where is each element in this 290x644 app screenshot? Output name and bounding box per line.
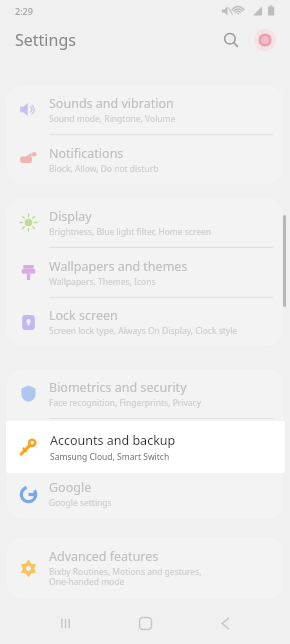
button[interactable]: Lock screen — [7, 298, 283, 346]
staticText: Accounts and backup — [49, 429, 175, 446]
staticText: Screen lock type, Always On Display, Clo… — [49, 325, 238, 337]
button[interactable]: Sounds and vibration — [7, 85, 283, 134]
staticText: Bixby Routines, Motions and gestures, On… — [49, 566, 202, 588]
button[interactable]: Accounts and backup — [7, 419, 283, 468]
button[interactable]: Advanced features — [7, 537, 283, 599]
staticText: Advanced features — [49, 548, 159, 565]
button[interactable]: Google — [7, 469, 283, 519]
button[interactable]: Accounts and backup — [6, 421, 285, 473]
button[interactable]: Notifications — [7, 135, 283, 184]
staticText: Samsung Cloud, Smart Switch — [50, 451, 170, 463]
staticText: Sound mode, Ringtone, Volume — [49, 113, 176, 125]
staticText: Lock screen — [49, 307, 118, 324]
staticText: Wallpapers and themes — [49, 258, 188, 275]
staticText: Notifications — [49, 145, 124, 162]
button[interactable]: Biometrics and security — [7, 369, 283, 418]
staticText: Google — [49, 479, 92, 496]
staticText: Google settings — [49, 497, 112, 509]
staticText: Sounds and vibration — [49, 95, 174, 112]
staticText: Accounts and backup — [50, 432, 176, 449]
button[interactable]: Home — [128, 606, 162, 640]
staticText: Biometrics and security — [49, 379, 187, 396]
button[interactable]: Account — [250, 25, 280, 55]
staticText: Wallpapers, Themes, Icons — [49, 276, 156, 288]
staticText: Brightness, Blue light filter, Home scre… — [49, 226, 212, 238]
staticText: Block, Allow, Do not disturb — [49, 163, 159, 175]
button[interactable]: Wallpapers and themes — [7, 248, 283, 297]
staticText: 2:29 — [15, 5, 33, 17]
button[interactable]: Recents — [48, 606, 82, 640]
button[interactable]: Search — [216, 25, 246, 55]
staticText: Settings — [15, 29, 76, 51]
button[interactable]: Display — [7, 198, 283, 247]
staticText: Samsung Cloud, Smart Switch — [49, 447, 169, 459]
staticText: Display — [49, 208, 92, 225]
staticText: Face recognition, Fingerprints, Privacy — [49, 397, 201, 409]
button[interactable]: Back — [208, 606, 242, 640]
